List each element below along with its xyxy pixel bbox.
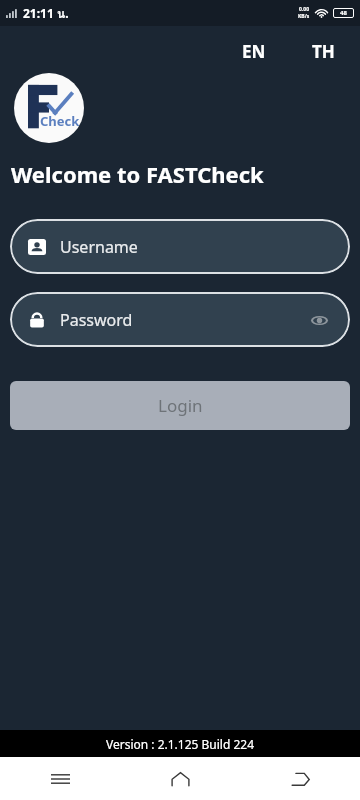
staticText: Welcome to FASTCheck — [11, 159, 264, 189]
button[interactable]: Back — [240, 757, 360, 800]
button[interactable]: TH — [304, 36, 343, 67]
staticText: EN — [242, 40, 266, 63]
staticText: TH — [312, 40, 335, 63]
staticText: Login — [158, 394, 203, 417]
staticText: Password — [60, 309, 133, 331]
staticText: Username — [60, 236, 138, 258]
staticText: 48 — [340, 9, 347, 17]
button[interactable]: Login — [10, 381, 350, 430]
button[interactable]: Username — [10, 219, 350, 274]
button[interactable]: Home — [120, 757, 240, 800]
button[interactable]: EN — [234, 36, 274, 67]
staticText: Check — [40, 112, 80, 130]
staticText: KB/s — [298, 13, 310, 20]
staticText: 0.00 — [299, 6, 309, 13]
button[interactable]: Show password — [306, 307, 332, 333]
button[interactable]: Recent apps — [0, 757, 120, 800]
button[interactable]: Password — [10, 292, 350, 347]
staticText: Version : 2.1.125 Build 224 — [106, 736, 255, 752]
staticText: 21:11 น. — [23, 4, 69, 23]
